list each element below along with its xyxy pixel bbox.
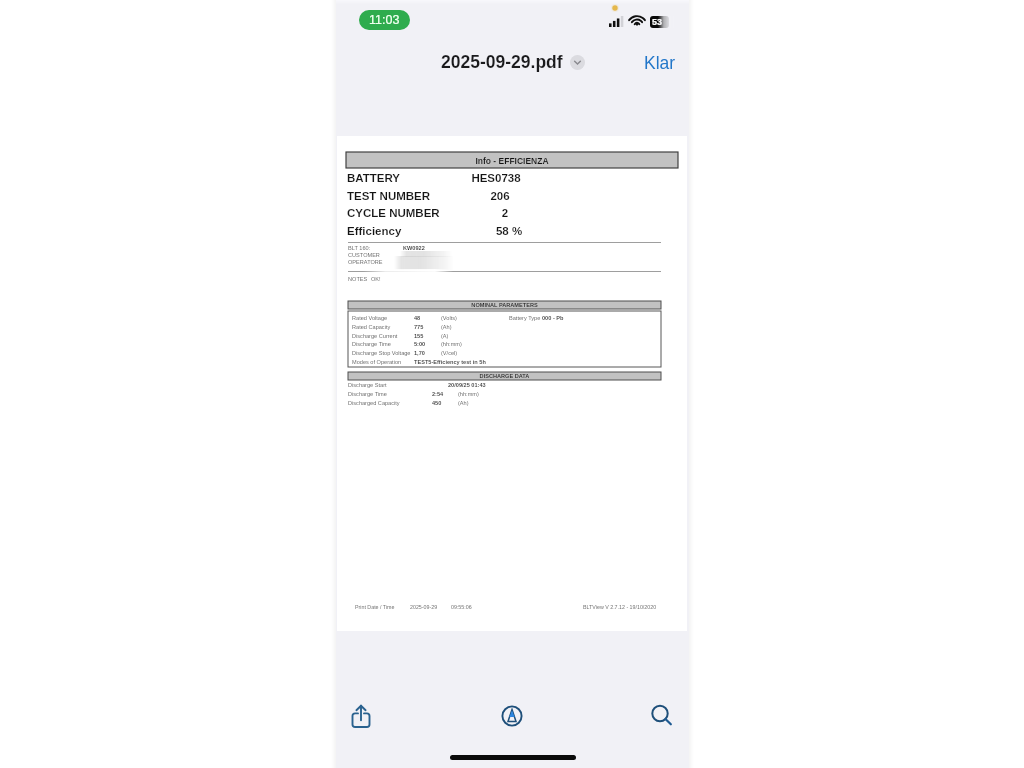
staticText: 1,70 [414,350,425,356]
staticText: (Ah) [458,400,469,406]
staticText: BATTERY [347,172,401,185]
staticText: CUSTOMER [348,252,380,258]
staticText: Efficiency [347,225,402,238]
staticText: Battery Type [509,315,541,321]
staticText: (hh:mm) [441,341,462,347]
staticText: TEST5-Efficiency test in 5h [414,359,486,365]
staticText: BLTView V 2.7.12 - 19/10/2020 [583,604,657,610]
staticText: 2:54 [432,391,444,397]
staticText: 2025-09-29.pdf [441,52,563,72]
staticText: HES0738 [436,172,556,185]
staticText: KW0922 [403,245,425,251]
button[interactable]: Klar [644,53,676,73]
staticText: Discharged Capacity [348,400,400,406]
staticText: Discharge Time [352,341,391,347]
staticText: (V/cel) [441,350,458,356]
staticText: Discharge Start [348,382,387,388]
staticText: DISCHARGE DATA [348,373,661,379]
staticText: Discharge Current [352,333,398,339]
staticText: BLT 160: [348,245,371,251]
staticText: 53 [652,17,663,27]
staticText: Info - EFFICIENZA [346,156,678,165]
staticText: Print Date / Time [355,604,395,610]
staticText: CYCLE NUMBER [347,207,440,220]
staticText: Modes of Operation [352,359,402,365]
staticText: NOMINAL PARAMETERS [348,302,661,308]
staticText: 20/09/25 01:43 [448,382,486,388]
staticText: Discharge Time [348,391,387,397]
staticText: 155 [414,333,424,339]
staticText: OK! [371,276,381,282]
staticText: OPERATORE [348,259,383,265]
staticText: (Ah) [441,324,452,330]
staticText: 206 [440,190,560,203]
staticText: 48 [414,315,421,321]
staticText: TEST NUMBER [347,190,431,203]
button[interactable]: Document options [570,55,585,70]
staticText: 450 [432,400,442,406]
staticText: Rated Capacity [352,324,391,330]
staticText: 775 [414,324,424,330]
staticText: 09:55:06 [451,604,472,610]
staticText: 2 [445,207,565,220]
staticText: (Volts) [441,315,457,321]
staticText: 000 - Pb [542,315,564,321]
staticText: 2025-09-29 [410,604,438,610]
staticText: 5:00 [414,341,426,347]
staticText: (hh:mm) [458,391,479,397]
staticText: 11:03 [369,13,400,27]
button[interactable]: Markup [489,693,535,739]
staticText: Klar [644,53,676,73]
staticText: (A) [441,333,449,339]
staticText: 58 % [449,225,569,238]
staticText: NOTES [348,276,368,282]
button[interactable]: Search [639,693,685,739]
staticText: Rated Voltage [352,315,388,321]
button[interactable]: Share [338,693,384,739]
staticText: Discharge Stop Voltage [352,350,411,356]
